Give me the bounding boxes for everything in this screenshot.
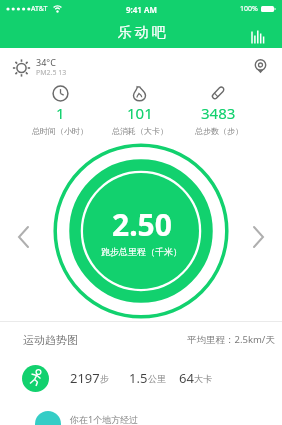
staticText: 2197 [70,369,100,387]
staticText: AT&T [31,4,48,14]
button[interactable] [250,22,268,44]
button[interactable]: 1 [20,85,100,136]
staticText: 总时间（小时） [32,126,88,136]
staticText: 1.5 [129,369,148,387]
staticText: 1 [56,103,65,123]
button[interactable]: 101 [100,85,179,136]
staticText: 平均里程：2.5km/天 [187,333,275,346]
staticText: 9:41 AM [126,4,157,15]
staticText: PM2.5 13 [36,68,67,78]
staticText: 运动趋势图 [23,333,78,347]
staticText: 你在1个地方经过 [70,413,139,425]
button[interactable] [252,58,269,75]
staticText: 64 [179,369,194,387]
button[interactable]: 2.50 [101,204,182,257]
button[interactable]: 3483 [179,85,258,136]
staticText: 步 [100,373,109,384]
button[interactable]: 你在1个地方经过 [0,404,282,425]
staticText: 101 [127,103,153,123]
button[interactable] [10,223,38,251]
staticText: 大卡 [194,373,212,384]
staticText: 公里 [148,373,166,384]
staticText: 100% [240,4,258,14]
staticText: 3483 [201,103,236,123]
staticText: 总消耗（大卡） [112,126,168,136]
staticText: 跑步总里程（千米） [101,246,182,257]
staticText: 34°C [36,56,56,68]
staticText: 总步数（步） [195,126,243,136]
staticText: 2.50 [112,204,172,245]
button[interactable] [244,223,272,251]
button[interactable]: 2197 [22,352,282,404]
staticText: 乐动吧 [116,24,167,42]
